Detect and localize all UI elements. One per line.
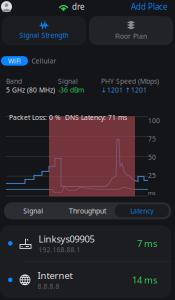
staticText: 7 ms xyxy=(137,237,157,250)
staticText: Signal Strength xyxy=(19,31,68,40)
staticText: 100 xyxy=(148,116,160,125)
staticText: ms xyxy=(148,189,156,196)
button[interactable]: Floor Plan xyxy=(89,16,173,45)
staticText: 75 xyxy=(148,135,156,143)
button[interactable]: Latency xyxy=(115,204,169,217)
staticText: 5 GHz (80 MHz) xyxy=(6,85,55,94)
staticText: Floor Plan xyxy=(115,32,147,41)
button[interactable]: WiFi xyxy=(1,56,28,66)
staticText: Internet xyxy=(37,269,72,282)
staticText: Latency xyxy=(130,206,153,215)
staticText: Packet Loss: 0 % xyxy=(9,113,61,122)
staticText: Signal xyxy=(23,206,43,215)
staticText: 192.168.88.1 xyxy=(38,245,80,254)
staticText: PHY Speed (Mbps) xyxy=(101,77,159,85)
staticText: Signal xyxy=(58,77,78,85)
button[interactable]: Cellular xyxy=(28,56,60,66)
button[interactable]: Throughput xyxy=(60,204,115,217)
staticText: Add Place xyxy=(131,1,168,12)
staticText: Cellular xyxy=(31,56,56,65)
staticText: DNS Latency: 71 ms xyxy=(65,113,127,122)
staticText: 50 xyxy=(148,153,156,162)
button[interactable]: Add Place xyxy=(131,1,175,12)
button[interactable]: Linksys09905 xyxy=(0,225,171,261)
staticText: WiFi xyxy=(8,56,21,65)
staticText: 8.8.8.8 xyxy=(37,282,59,290)
button[interactable]: Account xyxy=(1,1,12,12)
staticText: Throughput xyxy=(69,206,106,215)
staticText: 14 ms xyxy=(132,274,157,286)
button[interactable]: Signal xyxy=(6,204,60,217)
staticText: Linksys09905 xyxy=(38,233,94,245)
staticText: 25 xyxy=(148,171,156,180)
button[interactable]: Internet xyxy=(0,262,171,298)
staticText: -36 dBm xyxy=(58,85,84,94)
button[interactable]: Signal Strength xyxy=(2,16,86,45)
staticText: dre xyxy=(72,1,85,12)
staticText: ↓1201 ↑1201 xyxy=(101,85,147,94)
staticText: Band xyxy=(6,77,22,85)
